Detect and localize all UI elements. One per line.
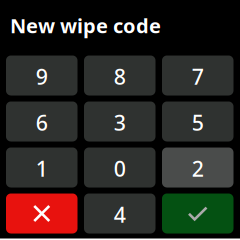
button[interactable]: 4 — [84, 193, 155, 233]
button[interactable]: 8 — [84, 55, 155, 95]
staticText: 5 — [192, 108, 204, 137]
button[interactable]: 9 — [6, 55, 77, 95]
staticText: 8 — [114, 62, 126, 91]
staticText: 6 — [36, 108, 48, 137]
button[interactable]: 3 — [84, 101, 155, 141]
staticText: 1 — [36, 154, 48, 183]
staticText: 9 — [36, 62, 48, 91]
staticText: 7 — [192, 62, 204, 91]
button[interactable]: 7 — [162, 55, 233, 95]
staticText: 2 — [192, 154, 204, 183]
button[interactable]: Confirm — [162, 193, 233, 233]
button[interactable]: Cancel — [6, 193, 77, 233]
button[interactable]: 6 — [6, 101, 77, 141]
button[interactable]: 2 — [162, 147, 233, 187]
button[interactable]: 0 — [84, 147, 155, 187]
staticText: 3 — [114, 108, 126, 137]
staticText: 4 — [114, 200, 126, 229]
button[interactable]: 1 — [6, 147, 77, 187]
button[interactable]: 5 — [162, 101, 233, 141]
staticText: New wipe code — [10, 12, 161, 39]
staticText: 0 — [114, 154, 126, 183]
